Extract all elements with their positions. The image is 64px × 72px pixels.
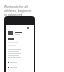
button[interactable] [8,62,34,63]
button[interactable] [8,67,34,68]
button[interactable] [6,25,34,31]
button[interactable] [8,31,34,35]
staticText: Workouts for all athletes, beginner to a… [4,5,35,17]
